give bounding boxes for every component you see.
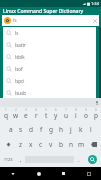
- button[interactable]: ls: [3, 27, 96, 39]
- button[interactable]: Clear search: [91, 17, 99, 25]
- button[interactable]: lsusb: [3, 87, 96, 98]
- button[interactable]: 9: [81, 107, 91, 122]
- button[interactable]: Search: [88, 155, 97, 164]
- staticText: a: [9, 125, 13, 134]
- button[interactable]: g: [46, 122, 56, 137]
- button[interactable]: n: [66, 137, 76, 152]
- button[interactable]: 7: [61, 107, 71, 122]
- staticText: o: [84, 111, 88, 120]
- staticText: e: [24, 111, 28, 120]
- staticText: lsblk: [15, 54, 25, 60]
- button[interactable]: m: [76, 137, 86, 152]
- button[interactable]: 4: [31, 107, 41, 122]
- button[interactable]: ,: [16, 152, 25, 167]
- button[interactable]: .: [74, 152, 83, 167]
- staticText: p: [94, 111, 98, 120]
- button[interactable]: s: [16, 122, 26, 137]
- staticText: g: [49, 125, 53, 134]
- staticText: 8: [75, 108, 77, 112]
- button[interactable]: 2: [11, 107, 21, 122]
- staticText: ls: [15, 30, 19, 36]
- button[interactable]: lspci: [3, 75, 96, 87]
- staticText: Linux Command Super Dictionary: [3, 8, 84, 15]
- staticText: w: [13, 111, 19, 120]
- button[interactable]: ?123: [0, 152, 16, 167]
- button[interactable]: Linux Command Super Dictionary: [0, 7, 101, 15]
- staticText: s: [19, 125, 23, 134]
- button[interactable]: Voice input: [93, 98, 101, 107]
- button[interactable]: c: [36, 137, 46, 152]
- staticText: lspci: [15, 78, 25, 84]
- staticText: z: [19, 140, 23, 149]
- staticText: 4: [35, 108, 37, 112]
- staticText: 7: [65, 108, 67, 112]
- staticText: lsusb: [15, 90, 27, 96]
- staticText: c: [39, 140, 43, 149]
- staticText: 1: [5, 108, 7, 112]
- staticText: 0: [95, 108, 97, 112]
- button[interactable]: lsattr: [3, 39, 96, 51]
- button[interactable]: 5: [41, 107, 51, 122]
- staticText: q: [4, 111, 8, 120]
- staticText: .: [78, 156, 80, 164]
- staticText: t: [45, 111, 48, 120]
- button[interactable]: Back: [0, 167, 26, 180]
- staticText: ls: [13, 17, 17, 24]
- staticText: j: [70, 125, 72, 134]
- button[interactable]: v: [46, 137, 56, 152]
- staticText: n: [69, 140, 74, 149]
- staticText: f: [40, 125, 43, 134]
- button[interactable]: Backspace: [86, 137, 101, 152]
- staticText: 3: [25, 108, 27, 112]
- staticText: l: [90, 125, 92, 134]
- staticText: r: [35, 111, 38, 120]
- staticText: x: [29, 140, 33, 149]
- staticText: m: [78, 140, 85, 149]
- button[interactable]: Home: [26, 167, 51, 180]
- button[interactable]: k: [76, 122, 86, 137]
- staticText: y: [54, 111, 58, 120]
- staticText: b: [59, 140, 63, 149]
- staticText: 1:34: [91, 1, 99, 6]
- button[interactable]: Recents: [51, 167, 76, 180]
- button[interactable]: h: [56, 122, 66, 137]
- button[interactable]: z: [16, 137, 26, 152]
- staticText: 2: [15, 108, 17, 112]
- button[interactable]: l: [86, 122, 96, 137]
- button[interactable]: b: [56, 137, 66, 152]
- staticText: k: [79, 125, 83, 134]
- button[interactable]: j: [66, 122, 76, 137]
- button[interactable]: 0: [91, 107, 101, 122]
- staticText: h: [59, 125, 64, 134]
- button[interactable]: Shift: [0, 137, 16, 152]
- staticText: d: [29, 125, 33, 134]
- button[interactable]: 6: [51, 107, 61, 122]
- staticText: 9: [85, 108, 87, 112]
- staticText: 5: [45, 108, 47, 112]
- button[interactable]: 8: [71, 107, 81, 122]
- staticText: ?123: [4, 157, 13, 162]
- button[interactable]: d: [26, 122, 36, 137]
- staticText: i: [75, 111, 77, 120]
- staticText: v: [49, 140, 53, 149]
- button[interactable]: App icon: [2, 15, 99, 26]
- button[interactable]: Hide keyboard: [76, 167, 101, 180]
- other: App icon: [4, 17, 11, 24]
- button[interactable]: lsblk: [3, 51, 96, 63]
- button[interactable]: a: [6, 122, 16, 137]
- staticText: u: [64, 111, 69, 120]
- staticText: lsattr: [15, 42, 26, 48]
- staticText: 6: [55, 108, 57, 112]
- staticText: ,: [20, 156, 22, 164]
- button[interactable]: 3: [21, 107, 31, 122]
- staticText: lsof: [15, 66, 23, 72]
- button[interactable]: 1: [0, 107, 11, 122]
- button[interactable]: lsof: [3, 63, 96, 75]
- button[interactable]: f: [36, 122, 46, 137]
- button[interactable]: x: [26, 137, 36, 152]
